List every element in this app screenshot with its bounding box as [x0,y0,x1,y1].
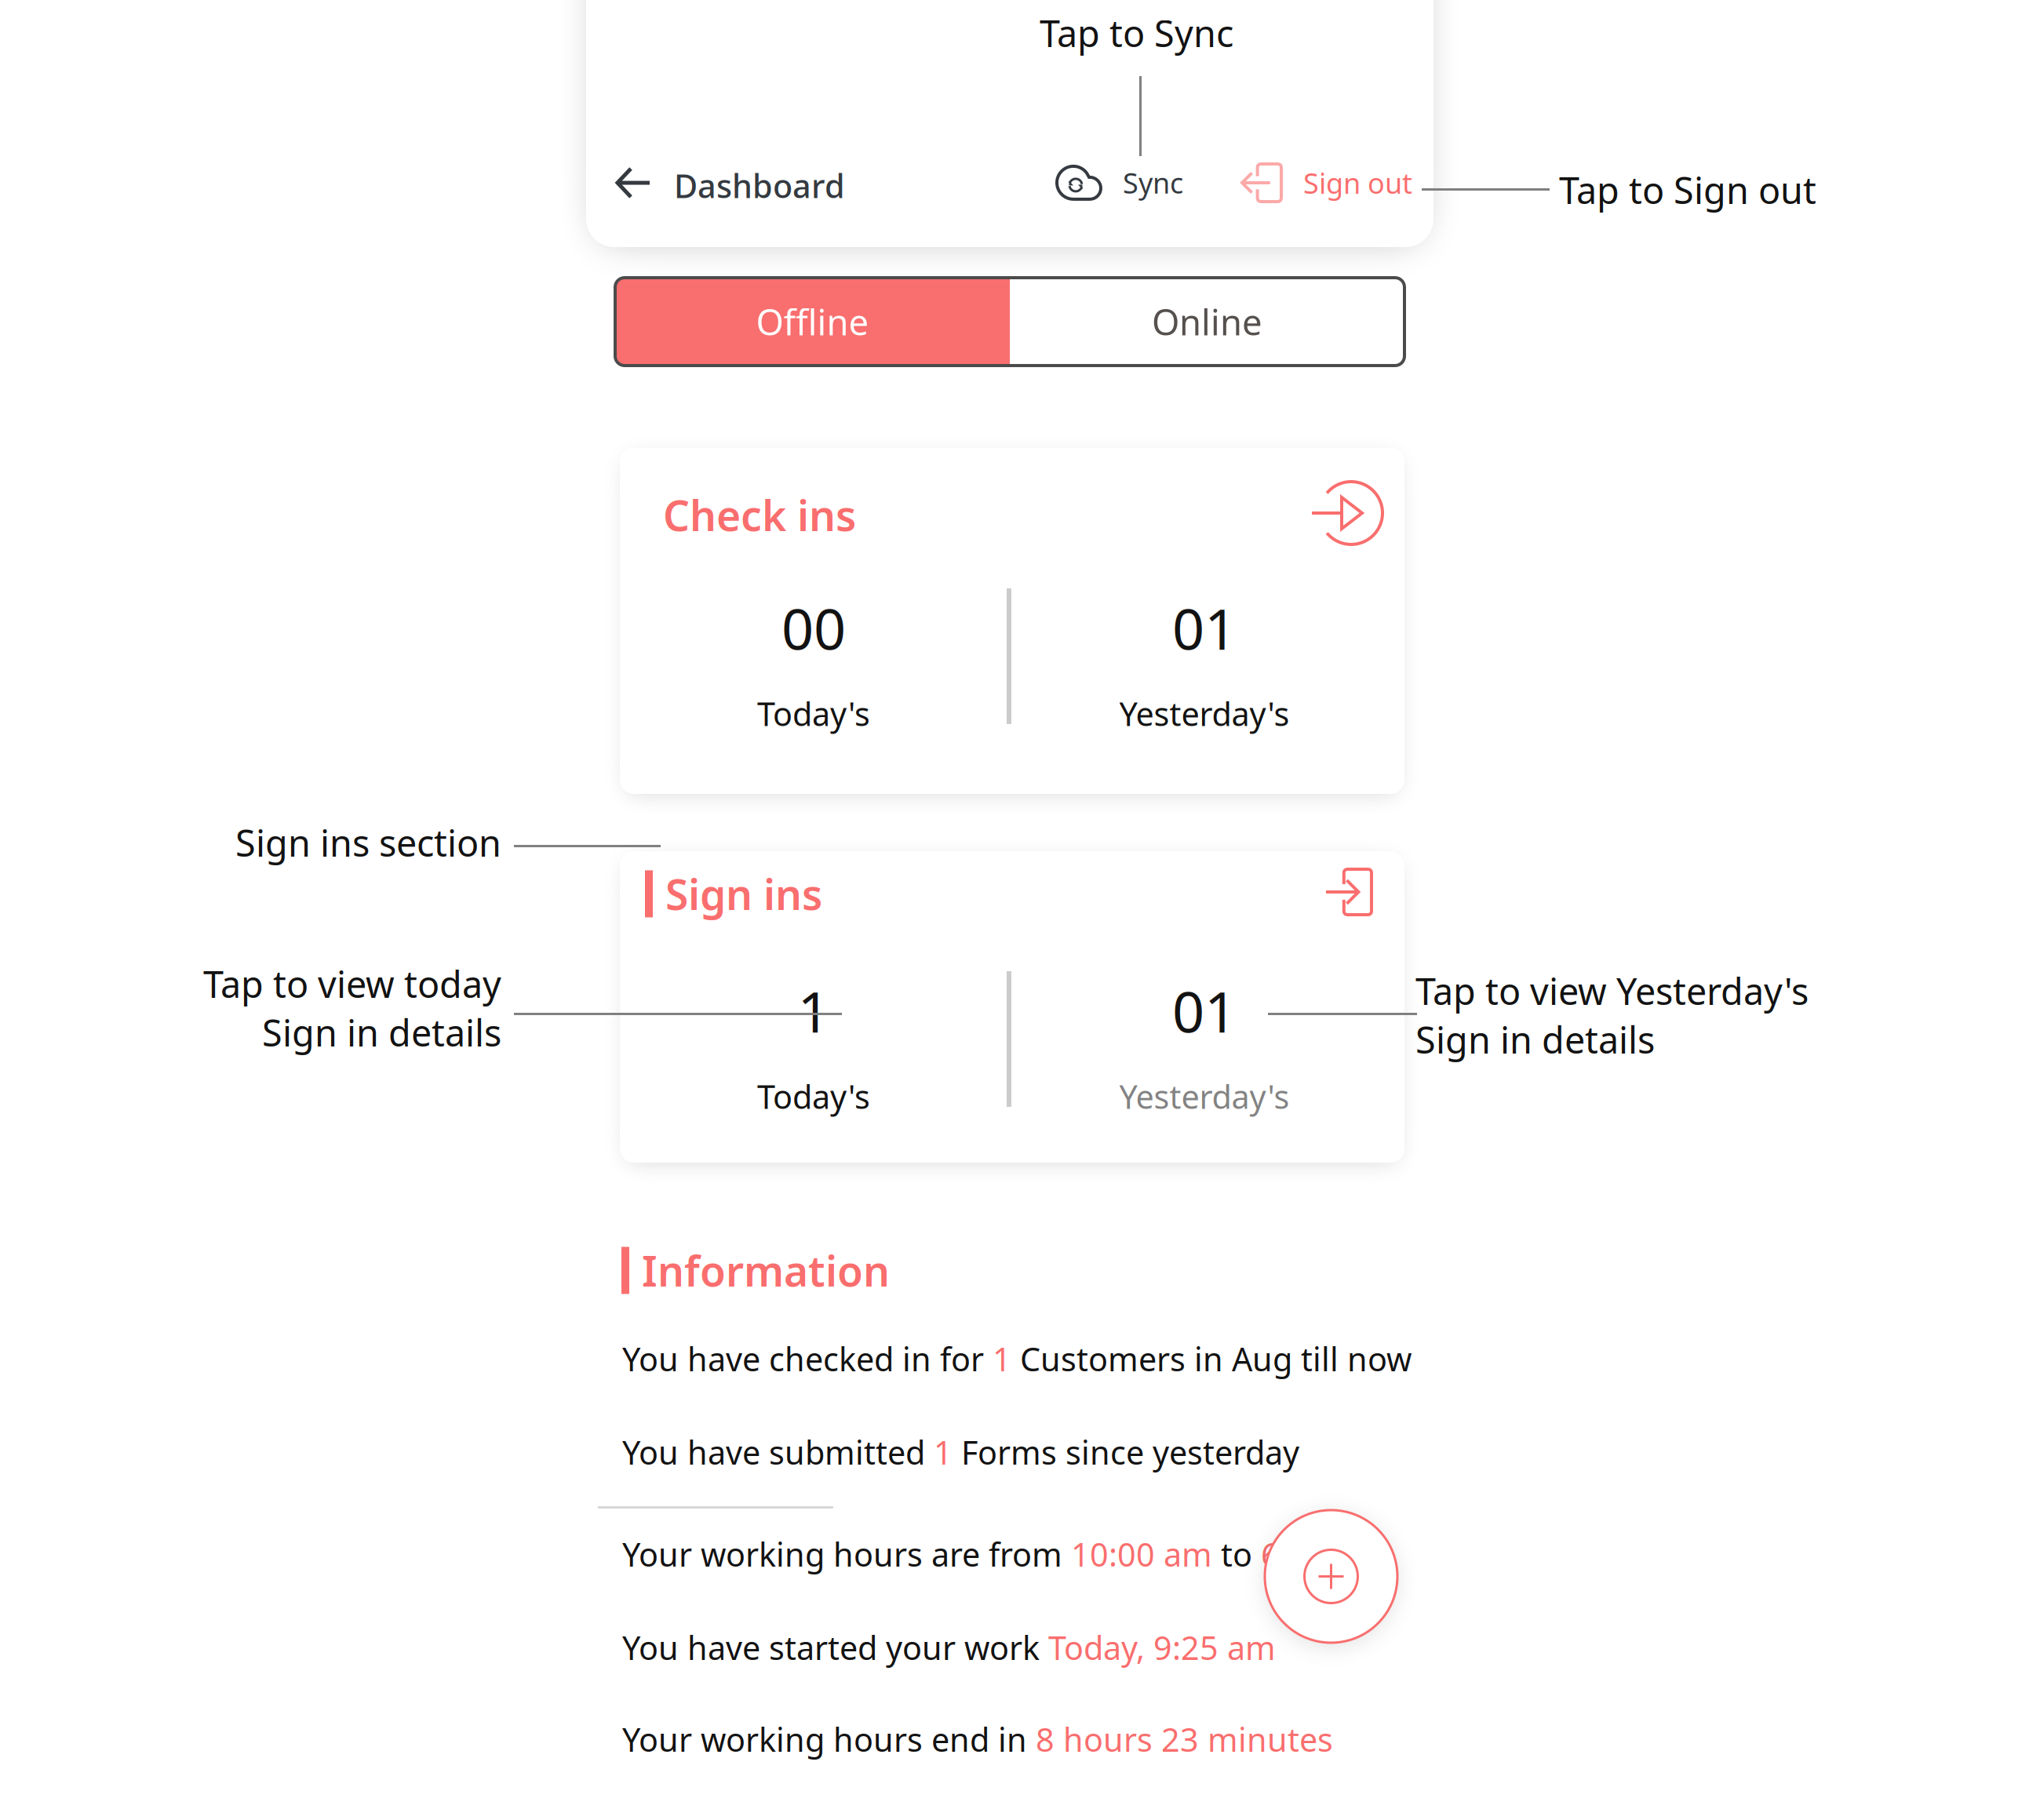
button[interactable]: Sign out [1240,162,1412,203]
staticText: 1 [798,973,830,1048]
staticText: Sign in details [1415,1015,1655,1064]
staticText: You have submitted [622,1431,934,1474]
staticText: Sign ins section [235,818,501,867]
staticText: Customers in Aug till now [1011,1337,1412,1380]
staticText: 1 [934,1431,953,1474]
staticText: Tap to Sync [1040,9,1233,57]
staticText: Today, 9:25 am [1048,1626,1276,1669]
staticText: Sign in details [262,1008,501,1057]
staticText: 8 hours 23 minutes [1036,1718,1333,1761]
staticText: Tap to view Yesterday's [1415,966,1809,1015]
staticText: 01 [1172,973,1237,1048]
staticText: 1 [993,1337,1011,1380]
button[interactable]: 01 [1011,590,1397,722]
staticText: 10:00 am [1071,1533,1212,1576]
button[interactable]: Back [615,166,651,200]
staticText: You have started your work [622,1626,1048,1669]
button[interactable]: New check in [1310,480,1384,546]
staticText: to [1212,1533,1261,1576]
staticText: Tap to view today [203,959,501,1008]
button[interactable]: Dashboard [674,164,845,207]
staticText: Information [642,1243,890,1298]
staticText: Forms since yesterday [953,1431,1299,1474]
button[interactable]: Offline [615,278,1010,366]
button[interactable]: 00 [621,590,1007,722]
staticText: Check ins [663,487,856,543]
staticText: Sync [1123,164,1183,201]
staticText: Offline [756,298,869,345]
button[interactable]: New sign in [1324,868,1373,916]
staticText: Sign ins [665,866,822,922]
staticText: You have checked in for [622,1337,993,1380]
staticText: 01 [1172,590,1237,665]
staticText: Tap to Sign out [1559,166,1816,214]
staticText: Dashboard [674,164,845,207]
button[interactable]: 1 [621,973,1007,1105]
staticText: Today's [757,1075,870,1118]
button[interactable]: Online [1010,278,1404,366]
staticText: Sign out [1303,164,1412,202]
button[interactable]: 01 [1011,973,1397,1105]
button[interactable]: Sync [1055,164,1183,201]
staticText: Online [1152,298,1262,345]
staticText: Your working hours are from [622,1533,1071,1576]
staticText: Yesterday's [1119,1075,1290,1118]
staticText: Your working hours end in [622,1718,1036,1761]
staticText: Yesterday's [1119,692,1290,735]
staticText: 00 [781,590,846,665]
staticText: Today's [757,692,870,735]
staticText: 6:00 pm [1261,1533,1385,1576]
button[interactable]: Add [1265,1510,1397,1643]
